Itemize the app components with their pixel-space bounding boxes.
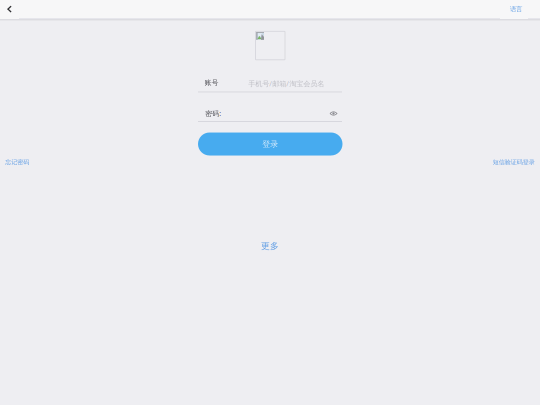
staticText: 手机号/邮箱/淘宝会员名 <box>248 79 324 88</box>
staticText: 短信验证码登录 <box>493 158 535 166</box>
button[interactable]: 忘记密码 <box>5 155 39 169</box>
button[interactable]: Show password <box>326 107 340 119</box>
staticText: 语言 <box>510 5 522 13</box>
button[interactable]: 短信验证码登录 <box>492 155 540 169</box>
button[interactable]: 登录 <box>198 132 342 155</box>
button[interactable]: Back <box>0 0 19 19</box>
button[interactable]: 密码: <box>198 100 342 122</box>
staticText: 账号 <box>204 78 218 87</box>
button[interactable]: 账号 <box>198 70 342 92</box>
staticText: 更多 <box>261 240 279 252</box>
staticText: 密码: <box>205 109 221 118</box>
staticText: 登录 <box>262 139 278 149</box>
button[interactable]: 更多 <box>257 238 283 254</box>
staticText: 忘记密码 <box>5 158 29 166</box>
button[interactable]: 语言 <box>500 0 528 19</box>
